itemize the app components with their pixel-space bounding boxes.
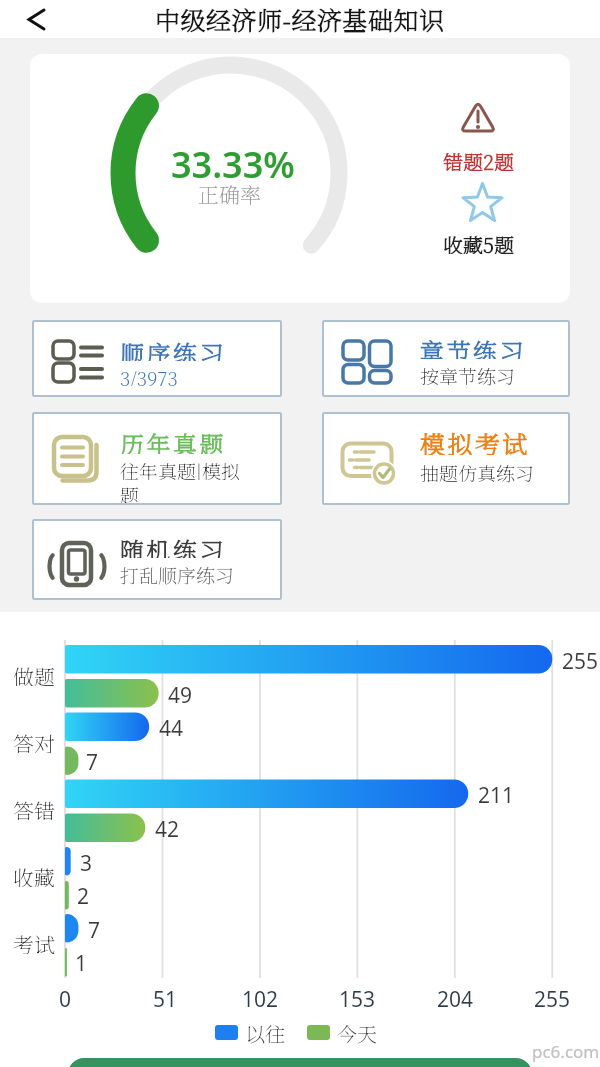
staticText: 抽题仿真练习 bbox=[420, 459, 535, 483]
staticText: 3 bbox=[80, 849, 93, 874]
button[interactable] bbox=[10, 4, 56, 36]
staticText: 44 bbox=[159, 714, 184, 739]
staticText: 33.33% bbox=[171, 140, 295, 182]
button[interactable]: 顺序练习 bbox=[32, 320, 282, 397]
staticText: 255 bbox=[534, 985, 571, 1010]
staticText: 51 bbox=[153, 985, 178, 1010]
staticText: 错题2题 bbox=[443, 147, 514, 171]
staticText: 204 bbox=[437, 985, 474, 1010]
staticText: 顺序练习 bbox=[120, 335, 226, 361]
staticText: 3/3973 bbox=[120, 364, 178, 386]
staticText: 答错 bbox=[13, 795, 55, 820]
staticText: 打乱顺序练习 bbox=[120, 561, 235, 585]
staticText: 1 bbox=[75, 949, 88, 974]
staticText: pc6.com bbox=[532, 1040, 600, 1062]
staticText: 收藏 bbox=[13, 862, 55, 887]
staticText: 49 bbox=[168, 681, 193, 706]
staticText: 7 bbox=[88, 916, 101, 941]
button[interactable] bbox=[215, 1025, 238, 1040]
staticText: 153 bbox=[339, 985, 376, 1010]
staticText: 题 bbox=[120, 481, 140, 504]
staticText: 中级经济师-经济基础知识 bbox=[155, 1, 445, 37]
staticText: 收藏5题 bbox=[443, 230, 514, 254]
staticText: 答对 bbox=[13, 728, 55, 753]
staticText: 章节练习 bbox=[420, 333, 526, 359]
staticText: 考试 bbox=[13, 929, 55, 954]
button[interactable]: 历年真题 bbox=[32, 412, 282, 505]
staticText: 102 bbox=[242, 985, 279, 1010]
button[interactable] bbox=[307, 1025, 330, 1040]
staticText: 随机练习 bbox=[120, 532, 226, 558]
staticText: 按章节练习 bbox=[420, 362, 516, 386]
staticText: 42 bbox=[155, 815, 180, 840]
staticText: 2 bbox=[77, 882, 90, 907]
button[interactable]: 随机练习 bbox=[32, 519, 282, 600]
staticText: 7 bbox=[86, 748, 99, 773]
staticText: 模拟考试 bbox=[420, 425, 531, 455]
staticText: 正确率 bbox=[198, 179, 261, 205]
button[interactable] bbox=[68, 1058, 532, 1067]
staticText: 往年真题|模拟 bbox=[120, 457, 240, 480]
staticText: 255 bbox=[562, 647, 599, 672]
button[interactable]: 模拟考试 bbox=[322, 412, 570, 505]
staticText: 今天 bbox=[337, 1019, 377, 1045]
staticText: 以往 bbox=[245, 1019, 285, 1045]
staticText: 历年真题 bbox=[120, 426, 226, 454]
staticText: 211 bbox=[478, 781, 515, 806]
staticText: 做题 bbox=[13, 661, 55, 686]
staticText: 0 bbox=[59, 985, 72, 1010]
button[interactable]: 章节练习 bbox=[322, 320, 570, 397]
